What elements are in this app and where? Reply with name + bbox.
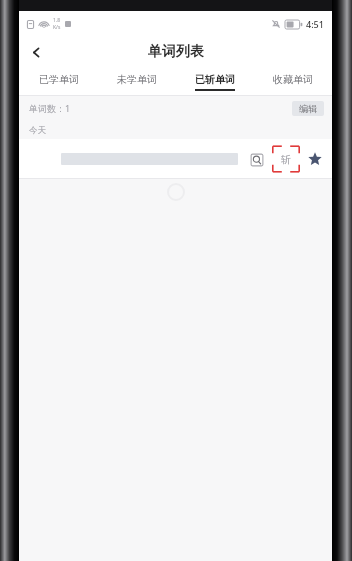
button[interactable]: 收藏单词: [254, 68, 332, 95]
staticText: 已学单词: [39, 73, 79, 86]
button[interactable]: Search: [248, 151, 265, 168]
button[interactable]: Favorite: [305, 149, 325, 169]
staticText: 斩: [281, 153, 291, 166]
button[interactable]: 已斩单词: [176, 68, 254, 95]
staticText: 未学单词: [117, 73, 157, 86]
button[interactable]: 未学单词: [98, 68, 176, 95]
staticText: 4:51: [306, 18, 324, 30]
button[interactable]: 编辑: [292, 101, 324, 116]
staticText: 已斩单词: [195, 73, 235, 86]
button[interactable]: 斩: [271, 143, 301, 175]
staticText: 单词列表: [148, 43, 204, 61]
staticText: 1.8: [53, 17, 61, 24]
staticText: 收藏单词: [273, 73, 313, 86]
staticText: 编辑: [299, 103, 317, 114]
button[interactable]: 已学单词: [19, 68, 98, 95]
staticText: 单词数：1: [29, 102, 71, 114]
staticText: 今天: [29, 125, 46, 136]
button[interactable]: Back: [19, 36, 53, 68]
staticText: K/s: [53, 24, 61, 31]
